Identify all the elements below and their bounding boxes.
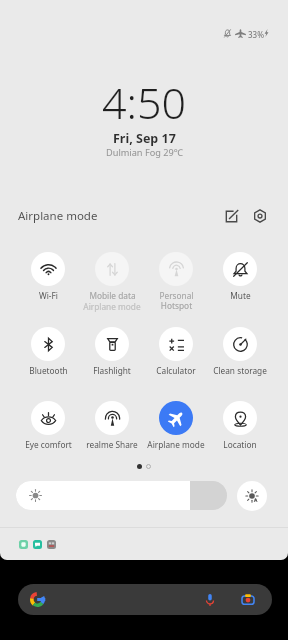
- button[interactable]: Personal Hotspot: [144, 252, 208, 322]
- staticText: Airplane mode: [18, 208, 98, 224]
- staticText: Calculator: [156, 365, 196, 376]
- button[interactable]: Airplane mode: [144, 401, 208, 471]
- staticText: Bluetooth: [29, 365, 68, 376]
- button[interactable]: Mobile data: [80, 252, 144, 322]
- button[interactable]: Brightness: [16, 481, 227, 510]
- button[interactable]: Flashlight: [80, 327, 144, 397]
- staticText: Dulmian Fog 29℃: [106, 146, 183, 159]
- staticText: Airplane mode: [83, 301, 141, 312]
- button[interactable]: Location: [208, 401, 272, 471]
- button[interactable]: Eye comfort: [16, 401, 80, 471]
- button[interactable]: realme Share: [80, 401, 144, 471]
- button[interactable]: Clean storage: [208, 327, 272, 397]
- staticText: 33%: [248, 29, 264, 38]
- staticText: Location: [223, 439, 257, 450]
- staticText: Airplane mode: [147, 439, 205, 450]
- button[interactable]: Calculator: [144, 327, 208, 397]
- button[interactable]: Wi-Fi: [16, 252, 80, 322]
- staticText: Mobile data: [89, 290, 136, 301]
- button[interactable]: Auto brightness: [237, 481, 267, 511]
- staticText: Personal Hotspot: [159, 290, 194, 312]
- button[interactable]: Bluetooth: [16, 327, 80, 397]
- button[interactable]: Settings: [248, 204, 272, 228]
- staticText: 4:50: [102, 73, 187, 128]
- staticText: Wi-Fi: [39, 290, 58, 301]
- staticText: Flashlight: [93, 365, 131, 376]
- staticText: Eye comfort: [25, 439, 72, 450]
- button[interactable]: Search: [18, 584, 272, 615]
- staticText: Fri, Sep 17: [113, 130, 176, 147]
- staticText: Mute: [230, 290, 251, 301]
- button[interactable]: Edit tiles: [219, 204, 243, 228]
- button[interactable]: Mute: [208, 252, 272, 322]
- staticText: realme Share: [86, 439, 138, 450]
- staticText: Clean storage: [213, 365, 267, 376]
